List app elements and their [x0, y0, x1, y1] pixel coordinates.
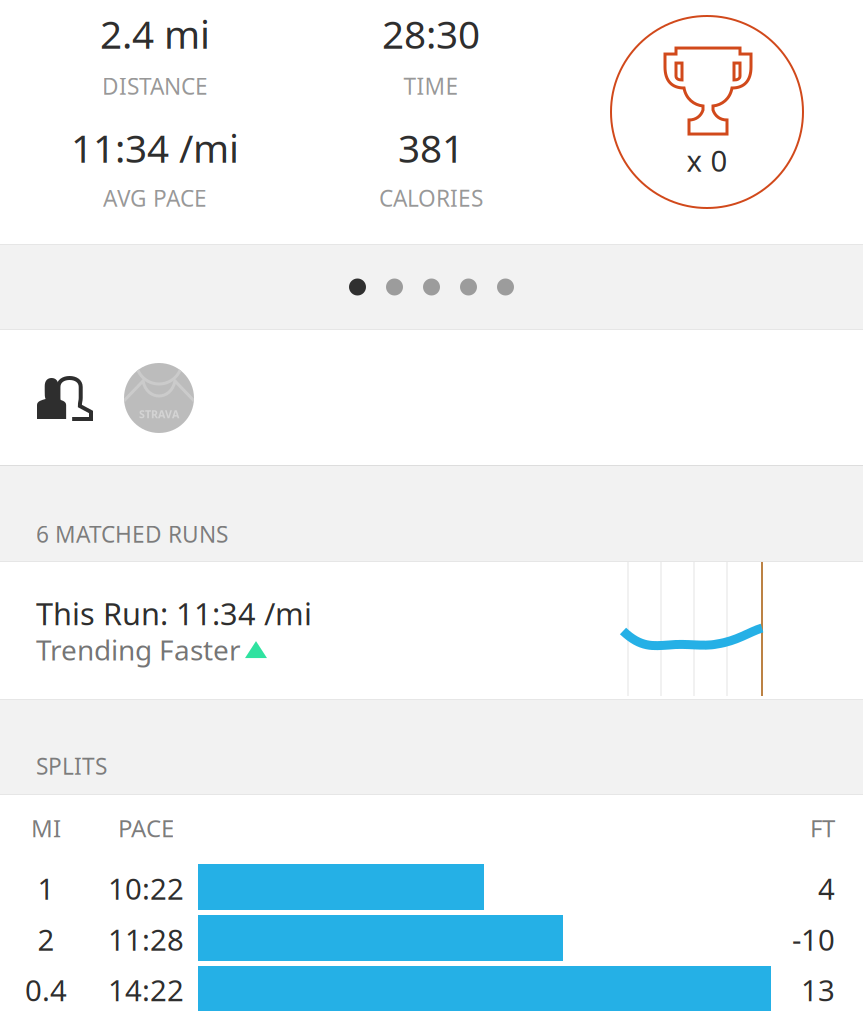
button[interactable]: Achievements	[0, 0, 192, 192]
staticText: 28:30	[382, 8, 480, 59]
staticText: 11:34 /mi	[71, 122, 239, 173]
staticText: PACE	[118, 812, 174, 844]
staticText: 10:22	[108, 869, 184, 908]
button[interactable]: Kudos	[0, 330, 124, 466]
staticText: 4	[818, 869, 835, 908]
staticText: This Run: 11:34 /mi	[36, 593, 312, 634]
staticText: 14:22	[108, 970, 184, 1009]
staticText: DISTANCE	[102, 71, 208, 101]
staticText: CALORIES	[379, 183, 483, 213]
staticText: Trending Faster	[36, 631, 241, 668]
staticText: 0.4	[25, 970, 67, 1009]
staticText: x 0	[686, 141, 727, 180]
staticText: 11:28	[108, 920, 184, 959]
button[interactable]: This Run: 11:34 /mi	[0, 562, 863, 699]
staticText: SPLITS	[36, 751, 107, 781]
staticText: 2	[37, 920, 54, 959]
staticText: AVG PACE	[103, 183, 207, 213]
staticText: 6 MATCHED RUNS	[36, 519, 228, 549]
staticText: 1	[37, 869, 54, 908]
staticText: 13	[801, 970, 835, 1009]
staticText: -10	[792, 920, 835, 959]
button[interactable]: Athlete	[124, 330, 194, 466]
staticText: TIME	[403, 71, 458, 101]
staticText: MI	[31, 812, 61, 844]
staticText: 2.4 mi	[100, 8, 210, 59]
staticText: FT	[810, 812, 835, 844]
staticText: 381	[398, 122, 464, 173]
staticText: STRAVA	[139, 407, 179, 421]
